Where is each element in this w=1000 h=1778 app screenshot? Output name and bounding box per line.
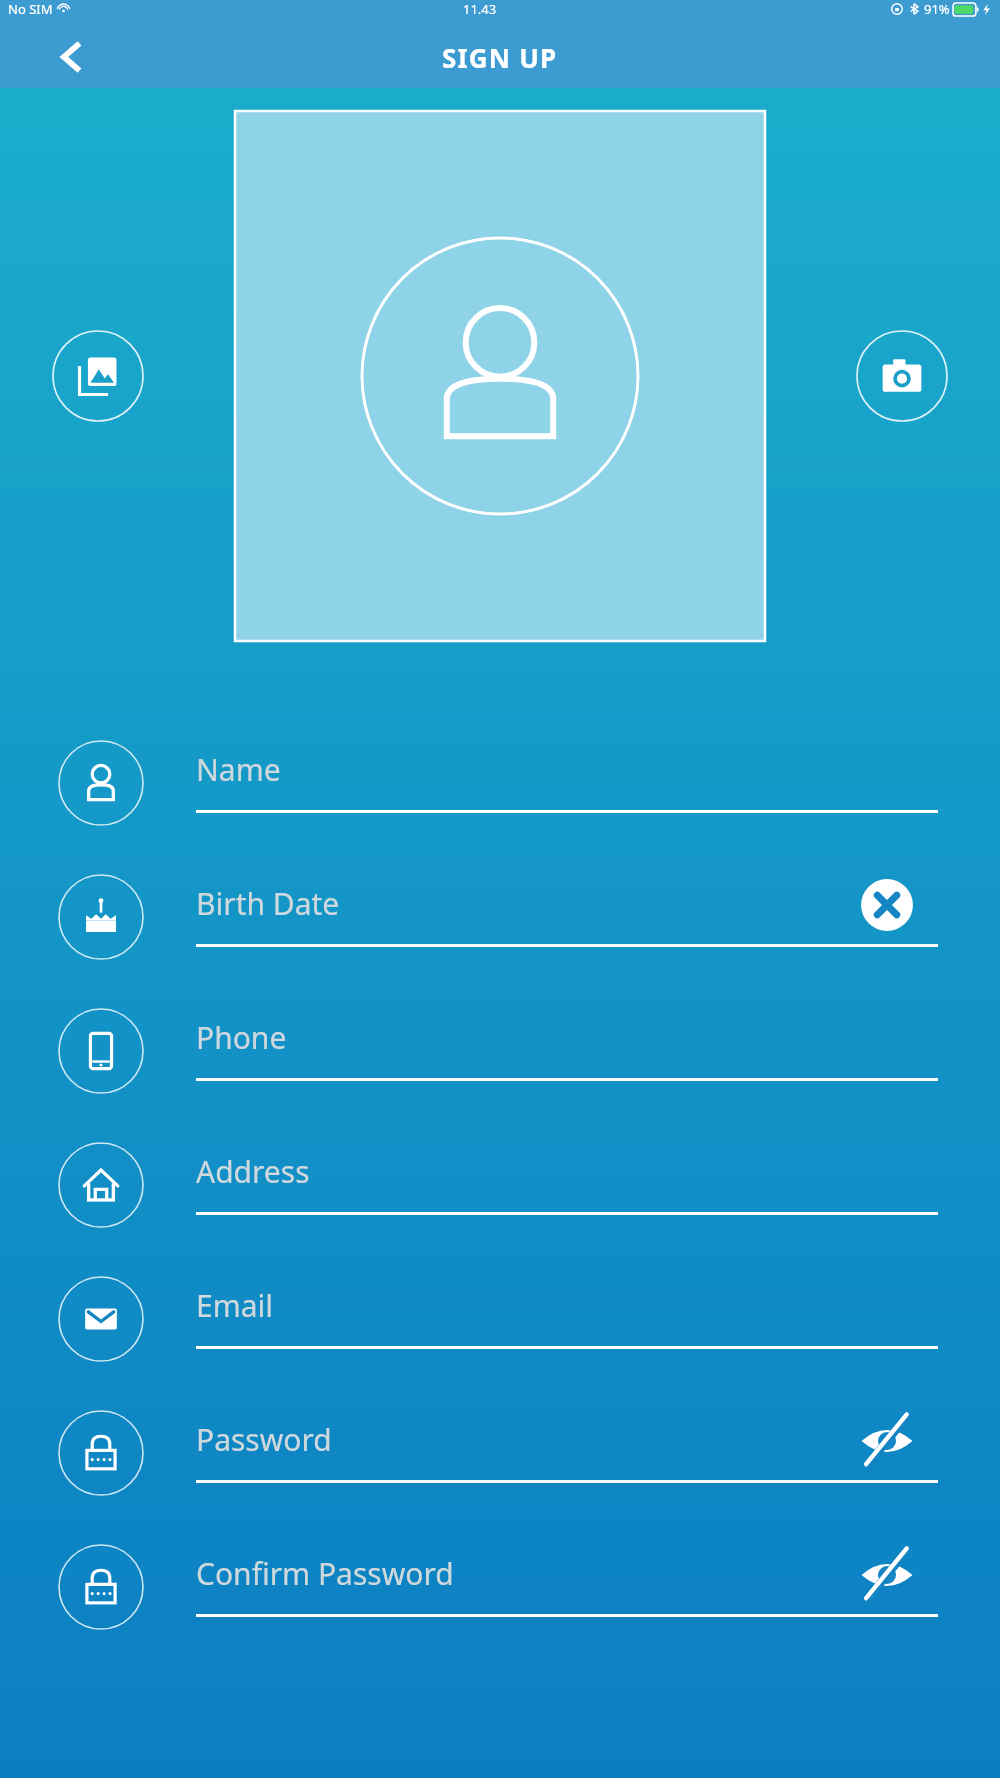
button[interactable]: Confirm Password	[0, 1520, 1000, 1654]
staticText: 11.43	[463, 0, 497, 18]
button[interactable]: Birth Date	[0, 850, 1000, 984]
button[interactable]: Address	[0, 1118, 1000, 1252]
button[interactable]	[235, 111, 765, 641]
staticText: Birth Date	[196, 883, 340, 924]
staticText: Confirm Password	[196, 1553, 454, 1594]
button[interactable]: Email	[0, 1252, 1000, 1386]
button[interactable]: Toggle password visibility	[852, 1540, 922, 1610]
button[interactable]: Password	[0, 1386, 1000, 1520]
staticText: Address	[196, 1151, 310, 1192]
button[interactable]: Clear	[852, 870, 922, 940]
staticText: Name	[196, 749, 281, 790]
staticText: Password	[196, 1419, 332, 1460]
button[interactable]: Pick from gallery	[52, 330, 144, 422]
staticText: No SIM	[8, 0, 53, 18]
button[interactable]: Back	[48, 33, 96, 81]
staticText: Phone	[196, 1017, 287, 1058]
staticText: Email	[196, 1285, 274, 1326]
button[interactable]: Name	[0, 716, 1000, 850]
staticText: 91%	[924, 0, 950, 18]
button[interactable]: Toggle password visibility	[852, 1406, 922, 1476]
button[interactable]: Phone	[0, 984, 1000, 1118]
staticText: SIGN UP	[442, 40, 558, 75]
button[interactable]: Take photo	[856, 330, 948, 422]
